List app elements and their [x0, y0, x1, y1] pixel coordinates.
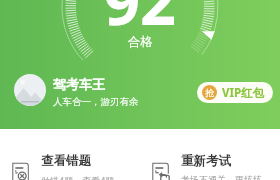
button[interactable]: Retake the exam [140, 138, 280, 180]
staticText: VIP红包 [222, 85, 265, 101]
staticText: 驾考车王 [53, 76, 105, 92]
staticText: 查看错题 [41, 153, 91, 169]
button[interactable]: 抢 [197, 82, 273, 103]
staticText: 重新考试 [181, 153, 231, 169]
staticText: 做错4题，查看4题 [41, 174, 115, 180]
staticText: 人车合一，游刃有余 [53, 96, 139, 108]
staticText: 抢 [205, 87, 214, 98]
staticText: 92 [104, 0, 177, 44]
button[interactable]: Review wrong answers [0, 138, 140, 180]
staticText: 考场不通关，再练练 [181, 174, 262, 180]
button[interactable]: Profile avatar [14, 74, 46, 106]
staticText: 合格 [128, 34, 153, 50]
other: Review wrong answers [12, 163, 32, 180]
other: Retake the exam [152, 163, 172, 180]
